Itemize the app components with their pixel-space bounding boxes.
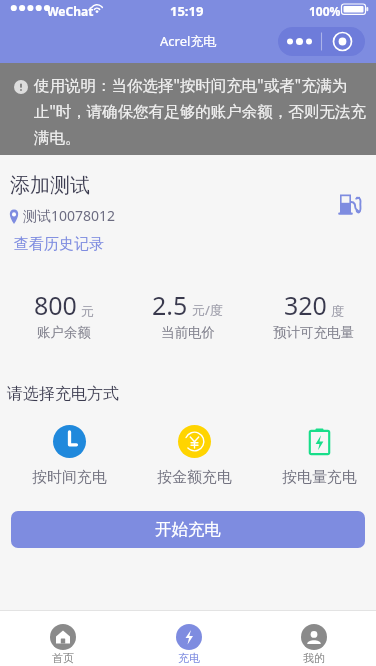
staticText: 请选择充电方式: [7, 384, 119, 404]
staticText: 度: [331, 303, 344, 319]
staticText: 查看历史记录: [14, 235, 104, 254]
button[interactable]: 按电量充电: [257, 421, 376, 487]
staticText: 320: [284, 288, 327, 322]
staticText: 充电: [178, 651, 200, 665]
staticText: 元: [81, 303, 94, 319]
staticText: 800: [34, 288, 77, 322]
staticText: 添加测试: [10, 173, 90, 198]
staticText: 2.5: [152, 288, 188, 322]
staticText: Acrel充电: [160, 32, 217, 50]
staticText: 元/度: [192, 301, 223, 319]
staticText: 按金额充电: [157, 468, 232, 487]
staticText: 预计可充电量: [273, 324, 354, 341]
button[interactable]: 按金额充电: [132, 421, 257, 487]
button[interactable]: 按时间充电: [7, 421, 132, 487]
staticText: 当前电价: [161, 324, 215, 341]
staticText: 15:19: [170, 2, 204, 20]
staticText: 100%: [309, 3, 341, 19]
button[interactable]: 我的: [251, 613, 376, 665]
staticText: 开始充电: [155, 519, 221, 540]
button[interactable]: 开始充电: [11, 511, 365, 548]
staticText: 按时间充电: [32, 468, 107, 487]
staticText: 账户余额: [37, 324, 91, 341]
button[interactable]: 查看历史记录: [14, 235, 104, 254]
button[interactable]: 首页: [0, 613, 126, 665]
staticText: WeChat: [47, 3, 94, 19]
button[interactable]: Mini program menu: [278, 27, 365, 56]
staticText: 按电量充电: [282, 468, 357, 487]
staticText: 我的: [303, 651, 325, 665]
staticText: 使用说明：当你选择"按时间充电"或者"充满为止"时，请确保您有足够的账户余额，否…: [34, 74, 372, 148]
staticText: 测试10078012: [23, 206, 116, 225]
staticText: 首页: [52, 651, 74, 665]
button[interactable]: 充电: [126, 613, 251, 665]
